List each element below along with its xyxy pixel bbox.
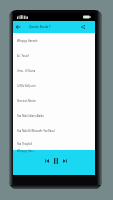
button[interactable]: Back bbox=[13, 21, 22, 33]
staticText: Yaa Thaiybili bbox=[17, 142, 33, 146]
button[interactable]: Previous bbox=[42, 157, 51, 165]
button[interactable]: Pause bbox=[51, 157, 60, 165]
button[interactable]: Lil Mo Bid Junei bbox=[13, 78, 95, 93]
staticText: Al - Yousif bbox=[17, 54, 29, 58]
staticText: Lil Mo Bid Junei bbox=[17, 84, 36, 88]
button[interactable]: Next bbox=[60, 157, 69, 165]
staticText: Uma - Ul Kuma bbox=[17, 69, 36, 73]
button[interactable]: Yaa Thaiybili bbox=[13, 138, 95, 150]
staticText: Yaa Nabi Salam Alaika bbox=[17, 114, 44, 118]
staticText: Whoppy Hannah bbox=[17, 149, 35, 153]
staticText: Qasida Burda 1 bbox=[29, 25, 51, 29]
staticText: Shortcut Nasim bbox=[17, 99, 36, 103]
button[interactable]: Share bbox=[77, 21, 89, 33]
button[interactable]: Al - Yousif bbox=[13, 48, 95, 63]
button[interactable]: Yaa Nabi Bil Muzzafir Yaa Rasul bbox=[13, 123, 95, 138]
button[interactable]: Yaa Nabi Salam Alaika bbox=[13, 108, 95, 123]
button[interactable]: Uma - Ul Kuma bbox=[13, 63, 95, 78]
staticText: Whoppy Hannah bbox=[17, 39, 38, 43]
button[interactable]: Shortcut Nasim bbox=[13, 93, 95, 108]
button[interactable]: Whoppy Hannah bbox=[13, 33, 95, 48]
staticText: Yaa Nabi Bil Muzzafir Yaa Rasul bbox=[17, 129, 55, 133]
